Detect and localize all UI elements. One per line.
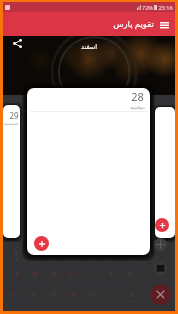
button[interactable]: ۱۷ — [82, 291, 101, 312]
staticText: ۲۲ — [108, 257, 113, 262]
staticText: ۶ — [33, 249, 37, 257]
button[interactable]: ۱۲ — [44, 270, 63, 291]
button[interactable]: 28 — [27, 88, 150, 255]
button[interactable]: ۶ — [25, 249, 44, 270]
staticText: ۱۰ — [88, 270, 95, 278]
button[interactable]: ۱۵ — [120, 291, 139, 312]
staticText: ۱۸ — [69, 291, 76, 299]
staticText: ۳ — [90, 249, 94, 257]
button[interactable]: ۷ — [6, 249, 25, 270]
button[interactable]: Open navigation menu — [156, 16, 172, 32]
button[interactable]: ۱۹ — [44, 291, 63, 312]
staticText: ۱۴ — [12, 270, 19, 278]
button[interactable]: Share — [10, 36, 25, 51]
staticText: ۲۱ — [12, 291, 19, 299]
button[interactable]: ۸ — [120, 270, 139, 291]
staticText: ۲۳ — [89, 257, 94, 262]
staticText: ۲۱ — [127, 257, 132, 262]
button[interactable]: ۲ — [101, 249, 120, 270]
button[interactable]: ۱ — [120, 249, 139, 270]
staticText: سه‌شنبه — [3, 121, 19, 126]
button[interactable] — [155, 107, 175, 238]
staticText: ۴ — [71, 249, 75, 257]
staticText: 23:16 — [158, 4, 173, 11]
button[interactable]: Add note — [151, 235, 170, 254]
button[interactable]: ۱۳ — [25, 270, 44, 291]
button[interactable]: ۴ — [63, 249, 82, 270]
button[interactable]: Close menu — [150, 284, 171, 305]
staticText: ۷ — [14, 249, 18, 257]
staticText: تقویم پارس — [113, 18, 154, 30]
staticText: دوشنبه — [130, 104, 145, 110]
staticText: ۱۷ — [88, 291, 95, 299]
button[interactable]: Add event — [151, 259, 170, 278]
staticText: ۵ — [52, 249, 56, 257]
staticText: 29 — [9, 110, 19, 121]
button[interactable]: Add event — [34, 236, 49, 251]
button[interactable]: ۲۱ — [6, 291, 25, 312]
button[interactable]: ۱۴ — [6, 270, 25, 291]
button[interactable]: ۱۶ — [101, 291, 120, 312]
staticText: ۱۹ — [50, 291, 57, 299]
button[interactable]: ۲۰ — [25, 291, 44, 312]
staticText: اسفند — [75, 43, 103, 51]
staticText: ۱۲ — [50, 270, 57, 278]
button[interactable]: ۱۱ — [63, 270, 82, 291]
staticText: 28 — [131, 89, 144, 104]
staticText: ۲ — [109, 249, 113, 257]
staticText: ۱ — [128, 249, 132, 257]
button[interactable]: ۹ — [101, 270, 120, 291]
button[interactable]: ۵ — [44, 249, 63, 270]
staticText: ۱۱ — [69, 270, 76, 278]
staticText: ۲۶ — [32, 257, 37, 262]
staticText: ۸ — [128, 270, 132, 278]
staticText: 72% — [142, 4, 153, 11]
staticText: ۱۳ — [31, 270, 38, 278]
staticText: ۱۶ — [107, 291, 114, 299]
staticText: ۷ — [109, 299, 112, 304]
staticText: ۱۵ — [126, 291, 133, 299]
button[interactable]: ۱۸ — [63, 291, 82, 312]
button[interactable]: 29 — [3, 105, 20, 238]
staticText: ۲۵ — [51, 257, 56, 262]
staticText: ۲۴ — [70, 257, 75, 262]
button[interactable]: ۳ — [82, 249, 101, 270]
staticText: ۲۰ — [31, 291, 38, 299]
staticText: ۹ — [109, 270, 113, 278]
